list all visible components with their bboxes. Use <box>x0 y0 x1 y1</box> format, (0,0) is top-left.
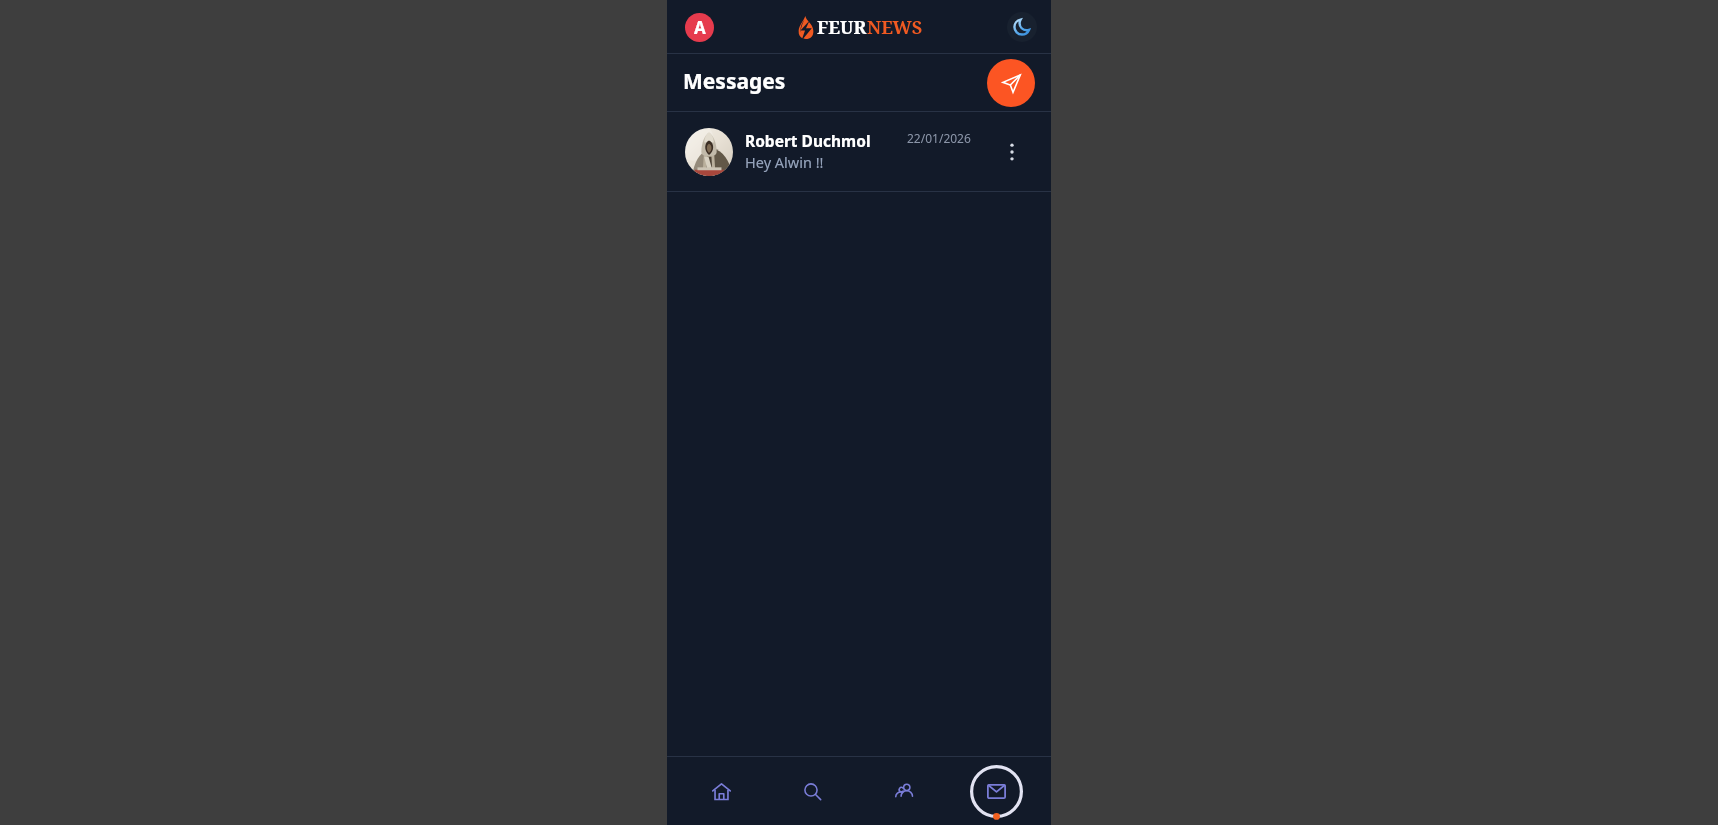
button[interactable]: Profile <box>685 13 714 42</box>
staticText: 22/01/2026 <box>907 130 971 146</box>
staticText: Robert Duchmol <box>745 130 871 151</box>
staticText: Messages <box>683 67 786 96</box>
staticText: NEWS <box>867 15 923 40</box>
button[interactable]: Toggle dark mode <box>1007 12 1037 42</box>
staticText: Hey Alwin !! <box>745 152 824 172</box>
button[interactable]: Home <box>676 757 767 825</box>
staticText: FEUR <box>817 15 867 40</box>
button[interactable]: More options <box>999 139 1025 165</box>
button[interactable]: Search <box>767 757 858 825</box>
button[interactable]: New message <box>987 59 1035 107</box>
button[interactable]: Messages <box>969 764 1024 819</box>
staticText: A <box>694 16 706 39</box>
button[interactable]: Contacts <box>858 757 950 825</box>
button[interactable]: Robert Duchmol <box>667 112 1051 192</box>
